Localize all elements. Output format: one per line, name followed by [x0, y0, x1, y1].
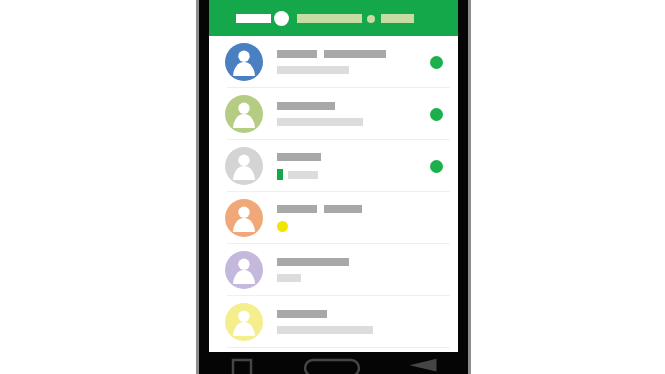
button[interactable] — [209, 244, 458, 296]
button[interactable] — [209, 36, 458, 88]
button[interactable] — [209, 140, 458, 192]
button[interactable]: Recent apps — [229, 358, 255, 374]
button[interactable]: Home — [303, 358, 361, 374]
button[interactable] — [209, 296, 458, 348]
button[interactable]: More options — [367, 15, 375, 23]
button[interactable] — [209, 88, 458, 140]
button[interactable]: Back — [408, 358, 438, 374]
button[interactable] — [209, 192, 458, 244]
button[interactable]: Profile — [274, 11, 289, 26]
